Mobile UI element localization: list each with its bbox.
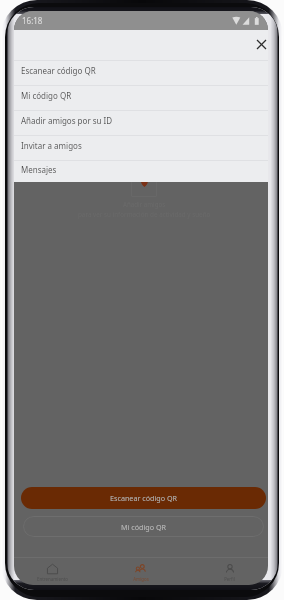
button[interactable]: Mi código QR (23, 516, 264, 537)
button[interactable]: Invitar a amigos (14, 136, 268, 160)
button[interactable]: Escanear código QR (14, 61, 268, 85)
button[interactable]: Cerrar (251, 34, 268, 54)
button[interactable]: Escanear código QR (21, 487, 266, 509)
staticText: Escanear código QR (21, 65, 96, 76)
button[interactable]: Amigos (96, 557, 185, 585)
staticText: Mi código QR (21, 90, 72, 101)
button[interactable]: Entrenamiento (14, 557, 96, 585)
button[interactable]: Mi código QR (14, 86, 268, 110)
staticText: Perfil (224, 576, 235, 582)
staticText: 16:18 (22, 15, 43, 26)
button[interactable]: Añadir amigos por su ID (14, 111, 268, 135)
staticText: Entrenamiento (37, 576, 68, 582)
staticText: Amigos (133, 576, 149, 582)
staticText: Añadir amigos por su ID (21, 115, 113, 126)
button[interactable]: Perfil (185, 557, 268, 585)
button[interactable]: Mensajes (14, 161, 268, 182)
staticText: Escanear código QR (110, 493, 178, 503)
staticText: Mensajes (21, 164, 57, 175)
staticText: Invitar a amigos (21, 140, 82, 151)
staticText: Mi código QR (121, 522, 167, 532)
